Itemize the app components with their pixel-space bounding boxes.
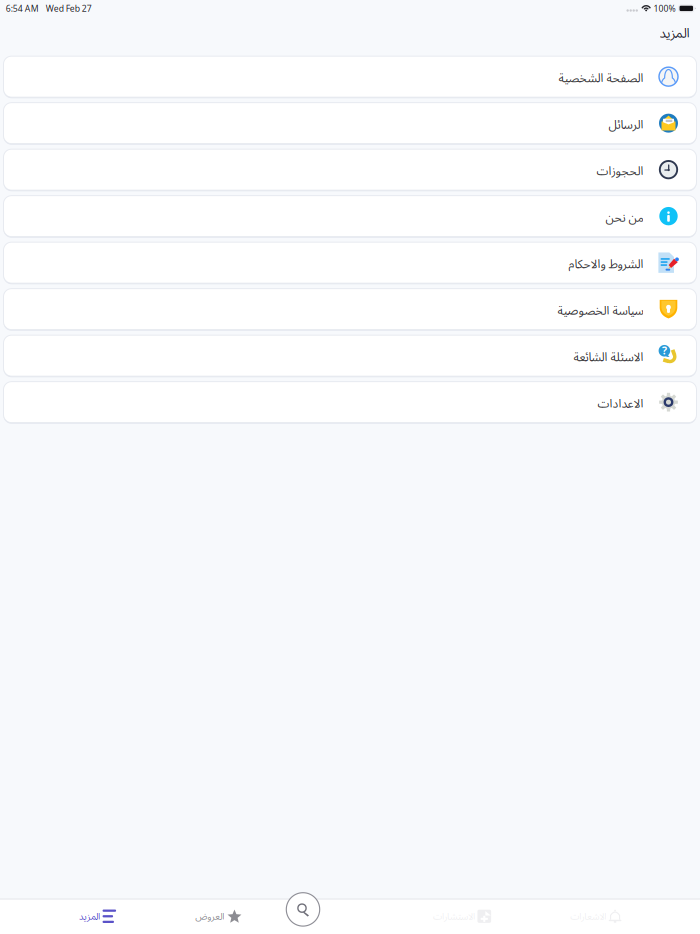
staticText: الاشعارات [570, 910, 606, 923]
button[interactable]: الاستشارات [432, 898, 491, 934]
staticText: الاسئلة الشائعة [573, 348, 643, 365]
button[interactable]: الاشعارات [570, 898, 621, 934]
staticText: الاستشارات [432, 910, 474, 923]
staticText: العروض [195, 910, 224, 923]
staticText: Wed Feb 27 [46, 2, 92, 14]
staticText: 6:54 AM [6, 2, 39, 14]
staticText: المزيد [659, 24, 689, 42]
button[interactable]: سياسة الخصوصية [3, 289, 696, 330]
staticText: الرسائل [608, 116, 643, 132]
staticText: ? [662, 343, 667, 357]
staticText: الصفحة الشخصية [558, 69, 643, 86]
button[interactable]: الشروط والاحكام [3, 242, 696, 283]
button[interactable]: الاعدادات [3, 382, 696, 423]
staticText: الشروط والاحكام [568, 255, 643, 272]
staticText: المزيد [79, 910, 100, 923]
button[interactable]: الصفحة الشخصية [3, 56, 696, 97]
staticText: 100% [653, 2, 675, 14]
button[interactable]: الاسئلة الشائعة [3, 335, 696, 376]
button[interactable]: Search [286, 892, 320, 926]
staticText: الاعدادات [597, 395, 643, 411]
button[interactable]: من نحن [3, 196, 696, 237]
button[interactable]: الحجوزات [3, 149, 696, 190]
staticText: من نحن [605, 209, 643, 225]
button[interactable]: المزيد [79, 898, 116, 934]
button[interactable]: الرسائل [3, 103, 696, 144]
staticText: سياسة الخصوصية [557, 302, 643, 318]
button[interactable]: العروض [195, 898, 242, 934]
staticText: الحجوزات [596, 162, 643, 179]
